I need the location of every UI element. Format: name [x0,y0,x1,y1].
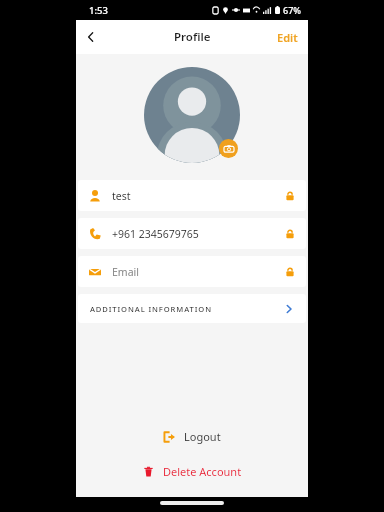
button[interactable]: test [78,180,306,211]
staticText: 67% [283,4,301,16]
staticText: Email [112,265,285,279]
button[interactable]: Delete Account [133,460,252,483]
button[interactable]: +961 2345679765 [78,218,306,249]
staticText: test [112,189,285,203]
button[interactable]: ADDITIONAL INFORMATION [78,294,306,323]
staticText: 1:53 [89,4,108,17]
staticText: Logout [184,429,221,444]
button[interactable]: Back [76,22,106,52]
staticText: ADDITIONAL INFORMATION [90,304,284,314]
staticText: +961 2345679765 [112,227,285,241]
button[interactable]: Edit [267,24,308,51]
button[interactable]: Change photo [219,139,238,158]
staticText: Delete Account [163,464,242,479]
button[interactable]: Email [78,256,306,287]
staticText: Edit [277,30,298,45]
staticText: Profile [174,29,211,45]
button[interactable]: Logout [153,425,231,448]
